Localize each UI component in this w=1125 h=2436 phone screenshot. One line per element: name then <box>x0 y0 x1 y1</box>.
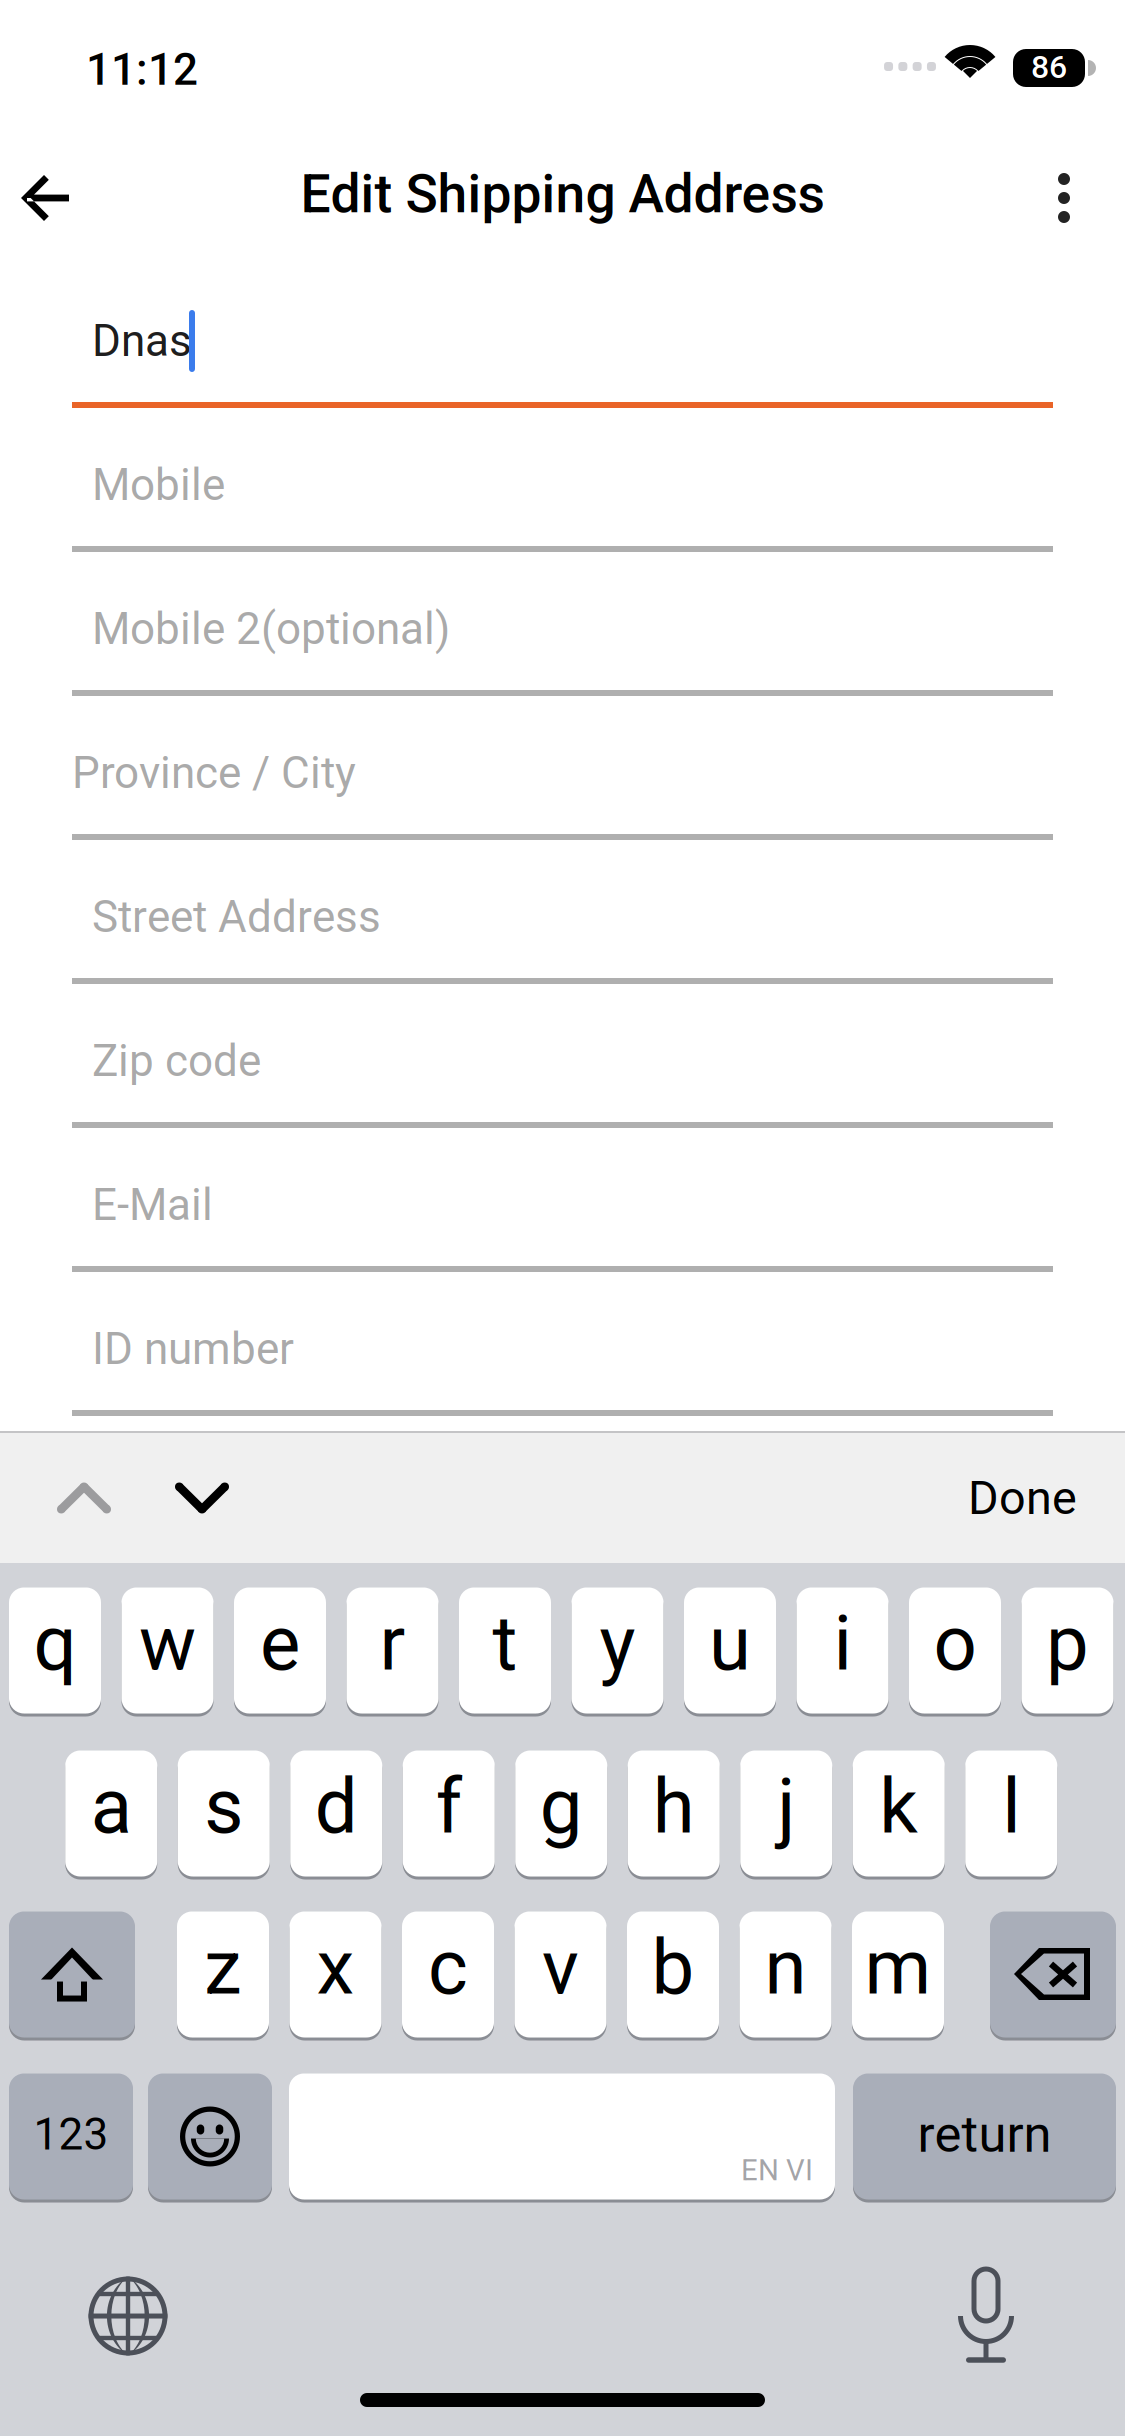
button[interactable]: h <box>628 1749 720 1878</box>
button[interactable]: m <box>852 1910 944 2039</box>
staticText: a <box>91 1762 132 1851</box>
button[interactable]: return <box>853 2072 1116 2201</box>
staticText: Dnas <box>92 315 192 367</box>
button[interactable]: Delete <box>990 1910 1116 2039</box>
staticText: k <box>879 1762 918 1851</box>
button[interactable]: 123 <box>9 2072 133 2201</box>
button[interactable]: Dictation <box>930 2254 1042 2366</box>
staticText: c <box>428 1923 468 2012</box>
button[interactable]: w <box>121 1586 213 1715</box>
staticText: g <box>540 1762 583 1851</box>
button[interactable]: y <box>571 1586 663 1715</box>
staticText: m <box>864 1923 931 2012</box>
staticText: E-Mail <box>92 1179 213 1231</box>
button[interactable]: g <box>515 1749 607 1878</box>
staticText: return <box>917 2105 1051 2164</box>
staticText: f <box>436 1762 462 1851</box>
button[interactable]: p <box>1021 1586 1113 1715</box>
button[interactable]: j <box>740 1749 832 1878</box>
button[interactable]: Space <box>289 2072 835 2201</box>
staticText: Street Address <box>92 891 381 943</box>
button[interactable]: k <box>853 1749 945 1878</box>
staticText: h <box>653 1762 695 1851</box>
button[interactable]: Previous field <box>32 1462 136 1534</box>
staticText: o <box>933 1599 976 1688</box>
staticText: q <box>33 1599 76 1688</box>
staticText: b <box>651 1923 694 2012</box>
staticText: d <box>315 1762 358 1851</box>
button[interactable]: q <box>9 1586 101 1715</box>
staticText: EN VI <box>741 2153 813 2187</box>
staticText: ID number <box>92 1323 294 1375</box>
button[interactable]: o <box>909 1586 1001 1715</box>
staticText: Mobile <box>92 459 225 511</box>
button[interactable]: d <box>290 1749 382 1878</box>
staticText: 11:12 <box>86 44 198 96</box>
button[interactable]: v <box>514 1910 606 2039</box>
staticText: p <box>1046 1599 1089 1688</box>
button[interactable]: i <box>796 1586 888 1715</box>
staticText: r <box>379 1599 405 1688</box>
button[interactable]: z <box>177 1910 269 2039</box>
staticText: j <box>777 1762 795 1851</box>
button[interactable]: e <box>234 1586 326 1715</box>
staticText: i <box>833 1599 851 1688</box>
button[interactable]: More options <box>1009 143 1119 253</box>
staticText: u <box>709 1599 751 1688</box>
staticText: Done <box>968 1471 1077 1525</box>
staticText: Mobile 2(optional) <box>92 603 450 655</box>
button[interactable]: Next field <box>150 1462 254 1534</box>
button[interactable]: a <box>65 1749 157 1878</box>
button[interactable]: r <box>346 1586 438 1715</box>
staticText: Province / City <box>72 747 356 799</box>
button[interactable]: x <box>289 1910 381 2039</box>
staticText: x <box>316 1923 354 2012</box>
button[interactable]: f <box>403 1749 495 1878</box>
staticText: 86 <box>1031 48 1067 86</box>
button[interactable]: n <box>739 1910 831 2039</box>
button[interactable]: Back <box>0 143 110 253</box>
staticText: s <box>204 1762 243 1851</box>
staticText: v <box>542 1923 579 2012</box>
button[interactable]: u <box>684 1586 776 1715</box>
staticText: 123 <box>33 2109 108 2160</box>
staticText: Zip code <box>92 1035 261 1087</box>
staticText: w <box>139 1599 196 1688</box>
button[interactable]: s <box>178 1749 270 1878</box>
staticText: n <box>764 1923 806 2012</box>
button[interactable]: c <box>402 1910 494 2039</box>
button[interactable]: b <box>627 1910 719 2039</box>
button[interactable]: Done <box>887 1461 1077 1535</box>
staticText: l <box>1002 1762 1020 1851</box>
button[interactable]: t <box>459 1586 551 1715</box>
button[interactable]: Emoji keyboard <box>148 2072 272 2201</box>
staticText: t <box>492 1599 517 1688</box>
button[interactable]: l <box>965 1749 1057 1878</box>
staticText: z <box>204 1923 242 2012</box>
button[interactable]: Shift <box>9 1910 135 2039</box>
staticText: e <box>260 1599 300 1688</box>
button[interactable]: Next keyboard <box>72 2260 184 2372</box>
staticText: y <box>599 1599 635 1688</box>
staticText: Edit Shipping Address <box>300 163 824 225</box>
